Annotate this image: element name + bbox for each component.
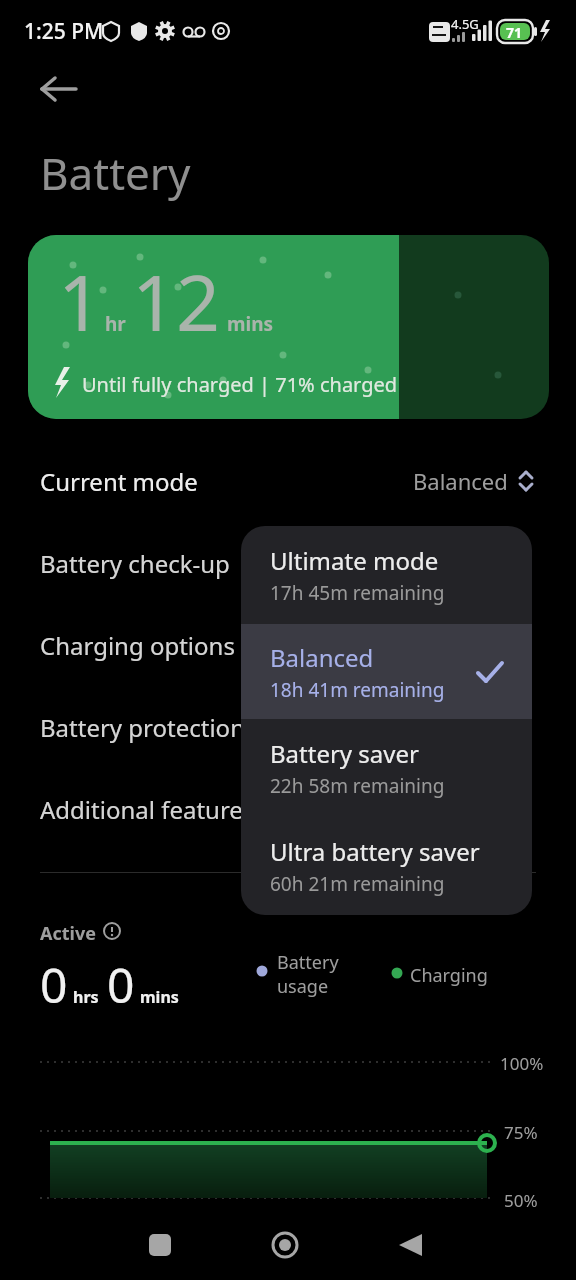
staticText: Battery check-up bbox=[40, 547, 230, 580]
staticText: Battery bbox=[40, 143, 191, 203]
staticText: 1:25 PM bbox=[24, 17, 104, 46]
staticText: 18h 41m remaining bbox=[270, 677, 445, 703]
staticText: 12 bbox=[132, 249, 221, 354]
staticText: 0 bbox=[107, 952, 135, 1017]
button[interactable]: Balanced bbox=[241, 624, 532, 719]
staticText: 1 bbox=[58, 249, 103, 354]
staticText: 0 bbox=[40, 952, 68, 1017]
staticText: Until fully charged | 71% charged bbox=[82, 371, 398, 398]
button[interactable]: Ultra battery saver bbox=[241, 817, 532, 915]
button[interactable]: Charging options bbox=[0, 619, 576, 671]
staticText: mins bbox=[227, 311, 274, 337]
staticText: Additional features bbox=[40, 793, 255, 826]
button[interactable]: Current mode bbox=[0, 456, 576, 506]
button[interactable]: Additional features bbox=[0, 783, 576, 835]
staticText: 17h 45m remaining bbox=[270, 580, 445, 606]
button[interactable]: 1 bbox=[28, 235, 549, 419]
staticText: 60h 21m remaining bbox=[270, 871, 445, 897]
staticText: Balanced bbox=[270, 641, 374, 674]
staticText: hrs bbox=[73, 986, 99, 1008]
button[interactable]: Battery saver bbox=[241, 719, 532, 817]
staticText: 50% bbox=[504, 1189, 538, 1212]
staticText: Ultra battery saver bbox=[270, 835, 480, 868]
staticText: Battery protection bbox=[40, 711, 245, 744]
staticText: 22h 58m remaining bbox=[270, 773, 445, 799]
button[interactable] bbox=[378, 1213, 442, 1277]
staticText: Ultimate mode bbox=[270, 544, 439, 577]
button[interactable]: Battery check-up bbox=[0, 537, 576, 589]
staticText: 100% bbox=[500, 1052, 544, 1075]
staticText: 4.5G bbox=[451, 15, 479, 33]
staticText: Active bbox=[40, 921, 96, 946]
staticText: 71 bbox=[506, 23, 523, 42]
button[interactable]: Ultimate mode bbox=[241, 526, 532, 624]
staticText: 75% bbox=[504, 1121, 538, 1144]
staticText: Current mode bbox=[40, 465, 198, 498]
button[interactable] bbox=[32, 68, 80, 116]
staticText: Balanced bbox=[413, 466, 508, 496]
staticText: mins bbox=[140, 986, 179, 1008]
staticText: Charging bbox=[410, 963, 488, 988]
button[interactable]: Battery protection bbox=[0, 701, 576, 753]
staticText: Charging options bbox=[40, 629, 235, 662]
button[interactable] bbox=[253, 1213, 317, 1277]
staticText: Battery usage bbox=[277, 950, 339, 998]
staticText: hr bbox=[105, 311, 126, 337]
staticText: Battery saver bbox=[270, 737, 419, 770]
button[interactable] bbox=[128, 1213, 192, 1277]
